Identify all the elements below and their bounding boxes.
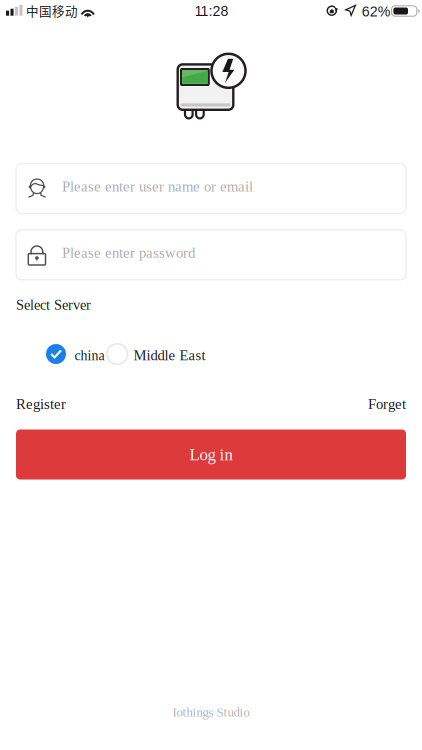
button[interactable]: Middle East [107,344,206,364]
button[interactable]: china [46,344,106,364]
staticText: Please enter password [62,245,195,261]
button[interactable]: Please enter password [16,230,406,280]
staticText: china [74,348,104,363]
staticText: 62% [362,4,391,19]
staticText: Log in [189,445,232,464]
staticText: Please enter user name or email [62,178,253,195]
button[interactable]: Forget [346,396,406,412]
staticText: Select Server [16,297,91,313]
staticText: Forget [368,396,406,412]
staticText: 中国移动 [26,1,78,19]
staticText: Register [16,396,66,412]
staticText: Middle East [133,347,205,363]
staticText: 11:28 [194,3,228,19]
button[interactable]: Log in [16,429,406,479]
button[interactable]: Please enter user name or email [16,163,406,213]
staticText: Iothings Studio [172,705,249,719]
button[interactable]: Register [16,396,66,412]
